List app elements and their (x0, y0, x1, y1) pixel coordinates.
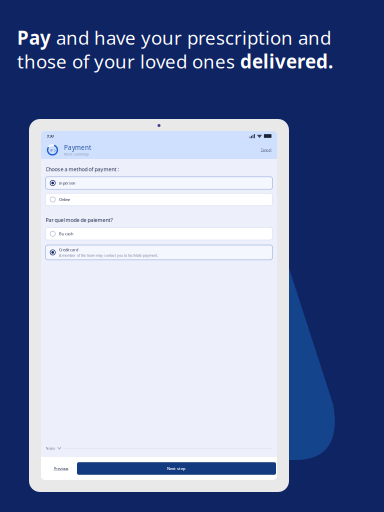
staticText: Pay and have your prescription and (17, 25, 331, 50)
staticText: Payment (64, 143, 91, 152)
button[interactable]: Credit card (45, 245, 272, 260)
staticText: Cancel (260, 147, 271, 152)
staticText: A member of the team may contact you to … (59, 253, 158, 258)
staticText: Previous (53, 466, 68, 471)
button[interactable]: Cancel (260, 147, 271, 152)
staticText: Par quel mode de paiement? (45, 216, 112, 224)
button[interactable]: Online (45, 193, 272, 206)
staticText: Next step (167, 466, 186, 471)
button[interactable]: Previous (45, 466, 77, 471)
staticText: By cash (59, 231, 73, 236)
button[interactable]: By cash (45, 227, 272, 240)
staticText: Next: Summary (64, 152, 89, 157)
staticText: Notes (45, 446, 55, 451)
staticText: 9:30 (46, 133, 53, 139)
staticText: 4/5 (49, 147, 55, 153)
button[interactable]: Next step (77, 462, 276, 475)
staticText: Online (59, 197, 70, 202)
staticText: Choose a method of payment : (45, 165, 118, 173)
staticText: those of your loved ones delivered. (17, 49, 333, 74)
staticText: Credit card (59, 247, 78, 252)
button[interactable]: In person (45, 177, 272, 189)
staticText: In person (59, 180, 75, 186)
